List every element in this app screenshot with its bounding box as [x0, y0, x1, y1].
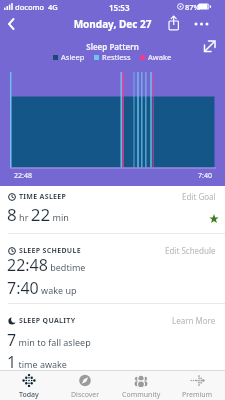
- button[interactable]: [4, 14, 22, 32]
- button[interactable]: [200, 38, 220, 58]
- staticText: Discover: [71, 390, 100, 400]
- button[interactable]: Discover: [57, 371, 113, 400]
- staticText: 7:40: [198, 171, 212, 181]
- staticText: 87%: [185, 2, 200, 12]
- staticText: Premium: [182, 390, 213, 400]
- button[interactable]: [192, 14, 212, 34]
- staticText: Asleep: [61, 52, 85, 62]
- staticText: 15:53: [109, 2, 130, 13]
- staticText: Restless: [102, 52, 131, 62]
- button[interactable]: Today: [0, 371, 57, 400]
- staticText: 8 hr 22 min: [7, 203, 69, 226]
- button[interactable]: SLEEP SCHEDULE: [8, 244, 216, 257]
- staticText: TIME ASLEEP: [19, 192, 67, 202]
- button[interactable]: Community: [113, 371, 169, 400]
- staticText: SLEEP QUALITY: [19, 316, 76, 326]
- button[interactable]: Premium: [169, 371, 225, 400]
- staticText: Monday, Dec 27: [0, 17, 225, 31]
- staticText: 7 min to fall asleep: [7, 329, 91, 351]
- button[interactable]: SLEEP QUALITY: [8, 314, 216, 327]
- staticText: Learn More: [172, 315, 216, 326]
- button[interactable]: 7:40 wake up: [7, 277, 77, 299]
- button[interactable]: 22:48 bedtime: [7, 254, 86, 276]
- staticText: 22:48: [14, 171, 32, 181]
- staticText: Edit Schedule: [165, 245, 216, 256]
- staticText: Community: [122, 390, 161, 400]
- staticText: Sleep Pattern: [0, 41, 225, 52]
- staticText: SLEEP SCHEDULE: [19, 246, 81, 256]
- staticText: 1 time awake: [7, 351, 67, 373]
- button[interactable]: TIME ASLEEP: [8, 190, 216, 203]
- staticText: Today: [19, 390, 39, 400]
- button[interactable]: [164, 13, 184, 33]
- staticText: Edit Goal: [182, 191, 216, 202]
- staticText: Awake: [148, 52, 172, 62]
- staticText: docomo 4G: [15, 2, 58, 12]
